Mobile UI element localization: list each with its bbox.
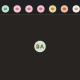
- button[interactable]: Zoe: [25, 5, 33, 13]
- button[interactable]: Mia: [13, 5, 21, 13]
- button[interactable]: Ivy: [37, 5, 44, 13]
- button[interactable]: Ava: [2, 5, 9, 13]
- button[interactable]: Leo: [49, 5, 56, 13]
- button[interactable]: Ben: [61, 5, 68, 13]
- button[interactable]: Profile BA: [34, 41, 46, 52]
- button[interactable]: Cal: [72, 5, 80, 13]
- staticText: BA: [36, 43, 44, 50]
